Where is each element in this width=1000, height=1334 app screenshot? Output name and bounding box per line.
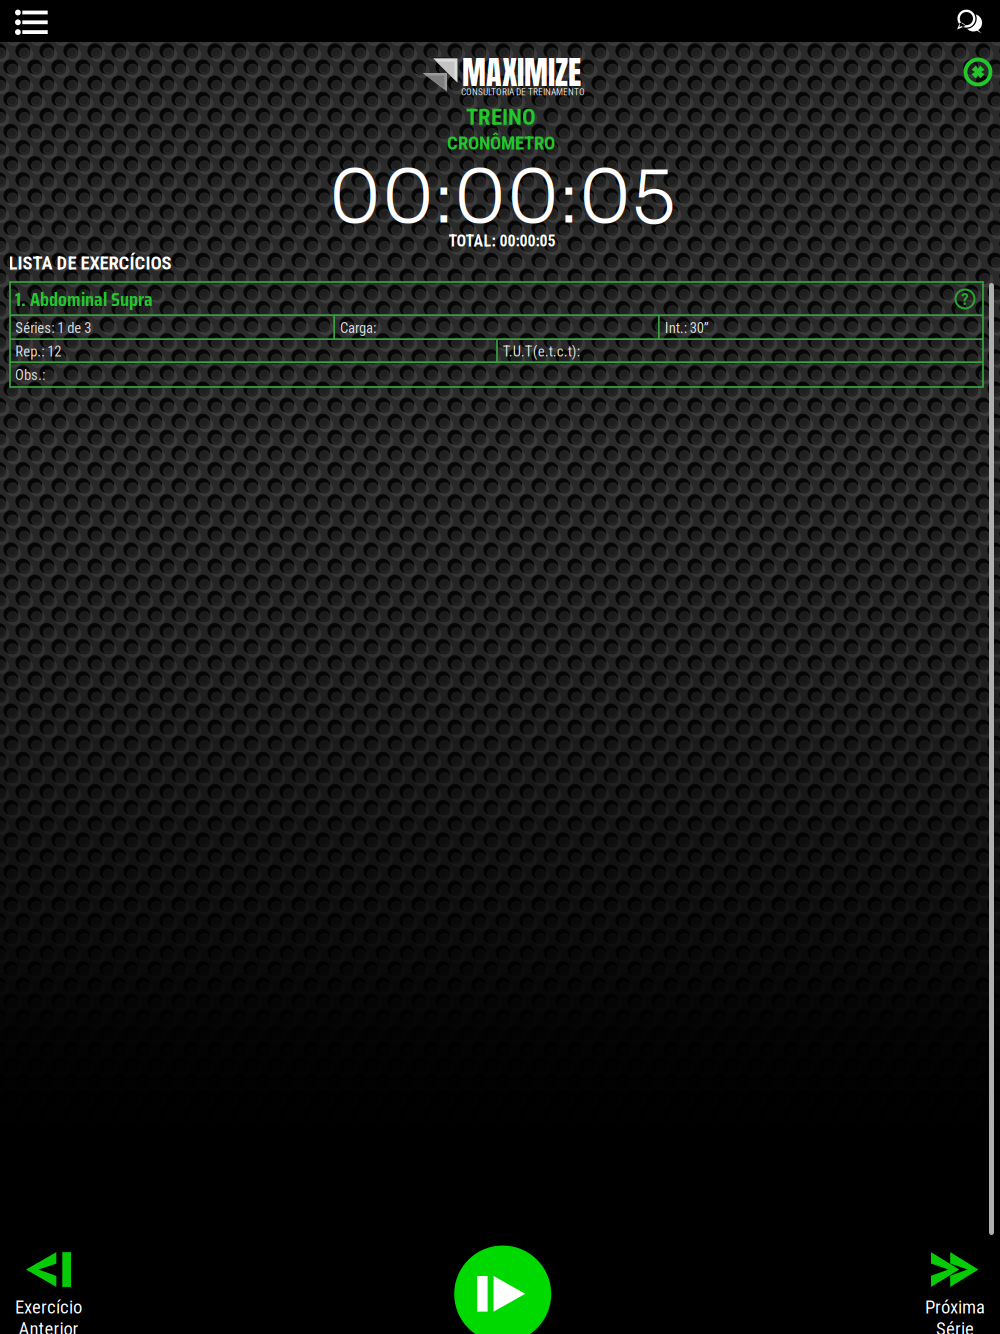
button[interactable]: Ajuda sobre o exercício [954, 288, 983, 310]
button[interactable]: Lista de treinos [15, 10, 48, 36]
staticText: Carga: [340, 319, 376, 337]
staticText: T.U.T(e.t.c.t): [503, 343, 580, 360]
staticText: CRONÔMETRO [447, 132, 555, 154]
staticText: LISTA DE EXERCÍCIOS [8, 252, 171, 274]
staticText: Próxima [925, 1296, 985, 1318]
staticText: Série [936, 1318, 974, 1334]
staticText: Int.: 30” [665, 319, 709, 337]
staticText: Séries: 1 de 3 [15, 319, 91, 337]
staticText: Exercício [15, 1296, 82, 1318]
staticText: Rep.: 12 [15, 343, 61, 360]
staticText: 1. Abdominal Supra [15, 283, 153, 315]
staticText: 00:00:05 [328, 153, 675, 243]
button[interactable]: Mensagens [956, 8, 982, 34]
staticText: Anterior [18, 1318, 78, 1334]
button[interactable]: Iniciar série [454, 1245, 551, 1334]
staticText: ? [961, 289, 969, 309]
staticText: TREINO [466, 104, 536, 130]
staticText: TOTAL: 00:00:05 [448, 232, 555, 250]
staticText: CONSULTORIA DE TREINAMENTO [461, 86, 585, 97]
button[interactable]: Próxima [890, 1249, 1000, 1334]
staticText: Obs.: [15, 366, 45, 384]
staticText: MAXIMIZE [462, 48, 581, 97]
button[interactable]: Exercício [0, 1249, 113, 1334]
button[interactable]: Fechar treino [963, 57, 993, 87]
